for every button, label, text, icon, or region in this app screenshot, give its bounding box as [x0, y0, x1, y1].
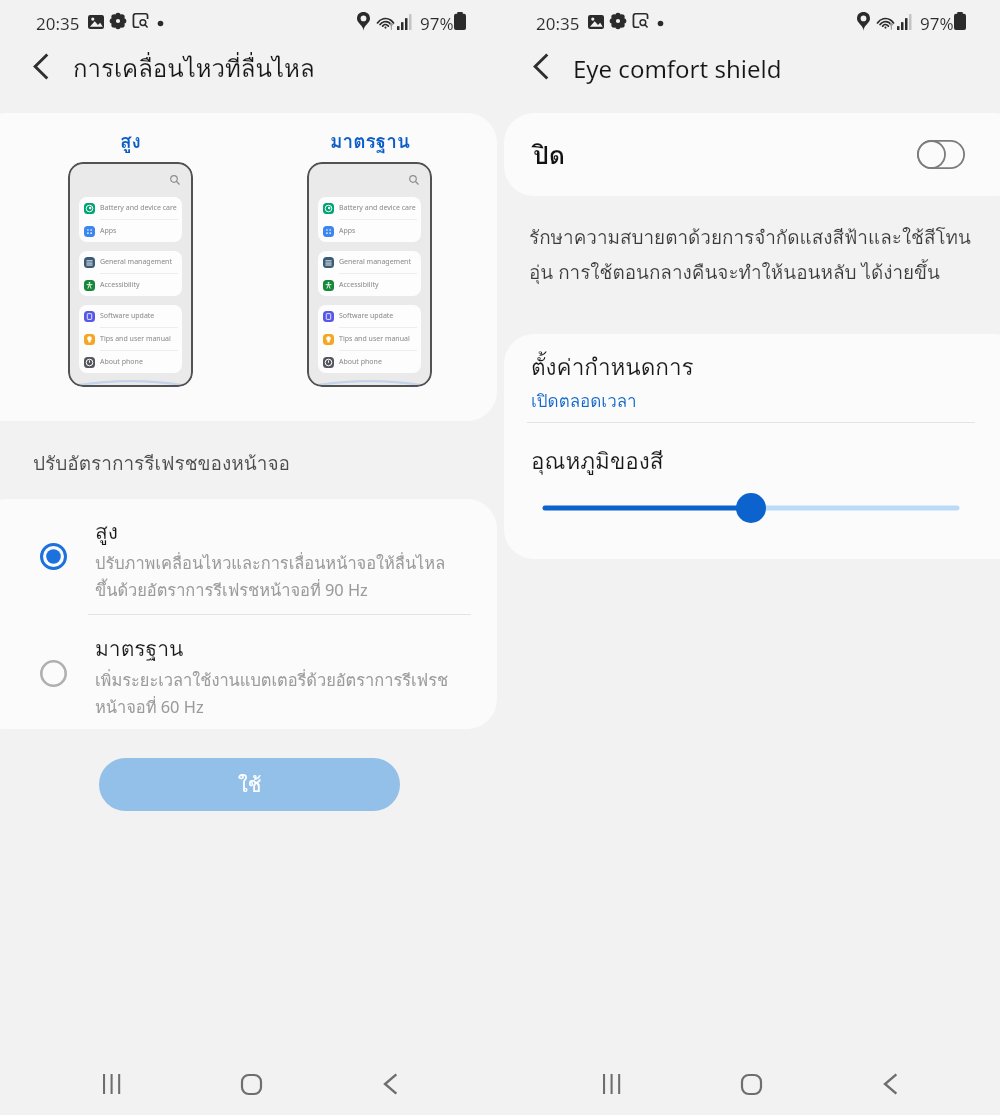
- button[interactable]: Back: [19, 45, 62, 88]
- staticText: Apps: [100, 226, 117, 236]
- button[interactable]: Back: [519, 45, 562, 88]
- staticText: 97%: [420, 12, 454, 35]
- staticText: Software update: [339, 311, 394, 321]
- staticText: Apps: [339, 226, 356, 236]
- staticText: สูง: [95, 515, 119, 548]
- staticText: รักษาความสบายตาด้วยการจำกัดแสงสีฟ้าและใช…: [529, 222, 971, 287]
- button[interactable]: มาตรฐาน: [0, 616, 497, 729]
- staticText: สูง: [120, 126, 141, 156]
- staticText: เพิ่มระยะเวลาใช้งานแบตเตอรี่ด้วยอัตราการ…: [95, 667, 449, 721]
- staticText: Tips and user manual: [100, 334, 171, 344]
- staticText: Battery and device care: [100, 203, 177, 213]
- button[interactable]: Back: [362, 1064, 419, 1104]
- button[interactable]: Colour temperature slider: [533, 491, 969, 525]
- button[interactable]: Recent apps: [583, 1064, 640, 1104]
- staticText: 97%: [920, 12, 954, 35]
- staticText: เปิดตลอดเวลา: [531, 387, 637, 414]
- button[interactable]: ตั้งค่ากำหนดการ: [504, 334, 1000, 426]
- button[interactable]: สูง: [0, 499, 497, 614]
- staticText: General management: [100, 257, 172, 267]
- staticText: Battery and device care: [339, 203, 416, 213]
- button[interactable]: ใช้: [99, 758, 400, 811]
- staticText: การเคลื่อนไหวที่ลื่นไหล: [73, 49, 315, 87]
- button[interactable]: Back: [862, 1064, 919, 1104]
- staticText: อุณหภูมิของสี: [531, 443, 664, 479]
- staticText: ปรับอัตราการรีเฟรชของหน้าจอ: [33, 448, 290, 478]
- staticText: Accessibility: [339, 280, 379, 290]
- button[interactable]: Home: [223, 1064, 280, 1104]
- button[interactable]: Eye comfort shield off: [504, 113, 1000, 196]
- staticText: General management: [339, 257, 411, 267]
- staticText: ใช้: [238, 769, 262, 801]
- staticText: Software update: [100, 311, 155, 321]
- staticText: ตั้งค่ากำหนดการ: [531, 349, 694, 385]
- staticText: Accessibility: [100, 280, 140, 290]
- staticText: Eye comfort shield: [573, 52, 782, 85]
- staticText: ปรับภาพเคลื่อนไหวและการเลื่อนหน้าจอให้ลื…: [95, 550, 446, 604]
- staticText: About phone: [100, 357, 143, 367]
- staticText: มาตรฐาน: [330, 126, 410, 156]
- staticText: Tips and user manual: [339, 334, 410, 344]
- staticText: ปิด: [533, 135, 566, 175]
- button[interactable]: Recent apps: [83, 1064, 140, 1104]
- staticText: 20:35: [36, 12, 80, 35]
- staticText: มาตรฐาน: [95, 632, 184, 665]
- staticText: About phone: [339, 357, 382, 367]
- staticText: 20:35: [536, 12, 580, 35]
- button[interactable]: Home: [723, 1064, 780, 1104]
